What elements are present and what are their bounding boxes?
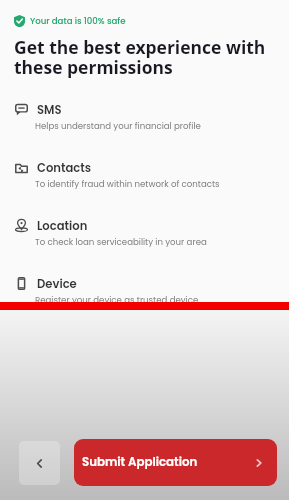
staticText: Register your device as trusted device: [35, 294, 199, 306]
staticText: To check loan serviceability in your are…: [35, 236, 207, 248]
staticText: Your data is 100% safe: [30, 15, 126, 27]
button[interactable]: Device: [0, 274, 289, 332]
staticText: Helps understand your financial profile: [35, 120, 201, 132]
staticText: Submit Application: [82, 454, 198, 471]
button[interactable]: Location: [0, 216, 289, 274]
button[interactable]: Submit Application: [74, 439, 277, 486]
staticText: Location: [37, 218, 88, 234]
staticText: Get the best experience with these permi…: [14, 35, 289, 79]
button[interactable]: SMS: [0, 100, 289, 158]
staticText: To identify fraud within network of cont…: [35, 178, 220, 190]
button[interactable]: Contacts: [0, 158, 289, 216]
staticText: SMS: [37, 102, 62, 118]
staticText: Contacts: [37, 160, 92, 176]
button[interactable]: Back: [19, 441, 60, 485]
staticText: Device: [37, 276, 77, 292]
